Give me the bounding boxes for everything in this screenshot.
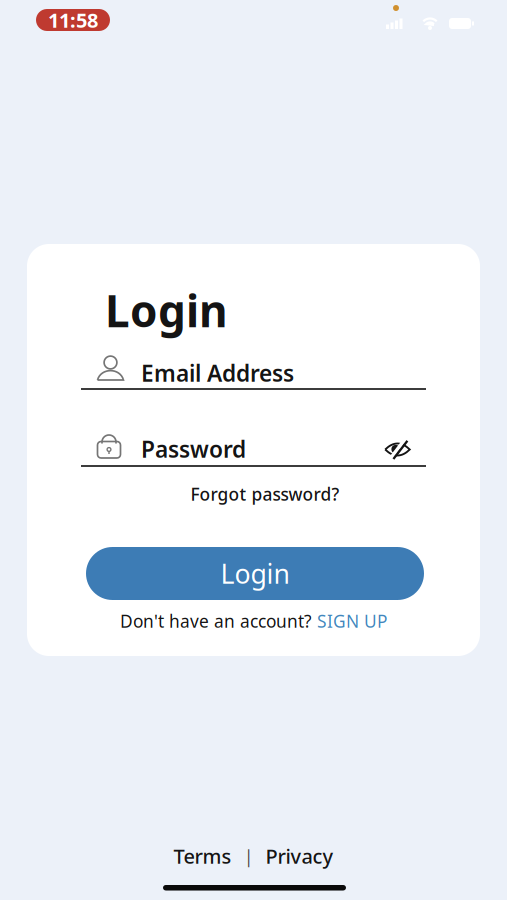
staticText: Terms (173, 843, 231, 869)
staticText: | (243, 844, 253, 868)
staticText: Don't have an account? (120, 609, 312, 632)
button[interactable]: Show password (384, 440, 411, 459)
staticText: Login (220, 556, 289, 591)
staticText: Login (105, 281, 228, 339)
staticText: Forgot password? (190, 482, 339, 505)
button[interactable]: Privacy (265, 843, 333, 869)
staticText: 11:58 (48, 7, 98, 33)
button[interactable]: Password (81, 429, 426, 467)
button[interactable]: Forgot password? (190, 482, 339, 505)
staticText: SIGN UP (317, 609, 387, 632)
button[interactable]: Email Address (81, 352, 426, 390)
staticText: Privacy (265, 843, 333, 869)
button[interactable]: SIGN UP (317, 609, 387, 632)
staticText: Password (141, 434, 246, 464)
staticText: Email Address (141, 358, 294, 388)
button[interactable]: Terms (173, 843, 231, 869)
button[interactable]: Login (86, 547, 424, 600)
button[interactable]: Recording indicator, 11:58 (36, 9, 110, 31)
